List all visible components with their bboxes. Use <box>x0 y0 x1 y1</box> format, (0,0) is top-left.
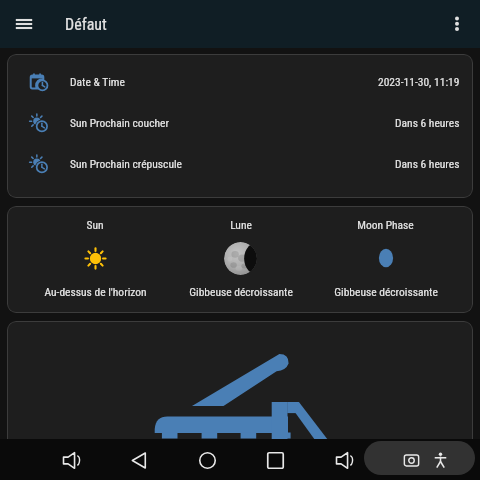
button[interactable]: Sun Prochain coucher <box>7 102 473 143</box>
button[interactable]: Back <box>124 445 154 475</box>
staticText: Défaut <box>65 15 107 34</box>
staticText: Lune <box>230 218 252 231</box>
button[interactable]: More options <box>441 8 473 40</box>
button[interactable]: Sun Prochain crépuscule <box>7 143 473 184</box>
button[interactable]: Moon Phase <box>313 206 458 313</box>
button[interactable]: Volume up <box>329 445 359 475</box>
button[interactable]: Accessibility <box>425 445 455 475</box>
staticText: Dans 6 heures <box>395 157 460 170</box>
button[interactable] <box>7 321 473 480</box>
staticText: Sun Prochain coucher <box>70 116 169 129</box>
staticText: Moon Phase <box>357 218 414 231</box>
staticText: Sun <box>86 218 104 231</box>
staticText: Date & Time <box>70 75 125 88</box>
staticText: 2023-11-30, 11:19 <box>378 75 460 88</box>
staticText: Gibbeuse décroissante <box>189 285 293 298</box>
button[interactable]: Volume down <box>56 445 86 475</box>
staticText: Au-dessus de l'horizon <box>44 285 147 298</box>
staticText: Gibbeuse décroissante <box>334 285 438 298</box>
staticText: Sun Prochain crépuscule <box>70 157 182 170</box>
button[interactable]: Home <box>192 445 222 475</box>
button[interactable]: Date & Time <box>7 61 473 102</box>
staticText: Dans 6 heures <box>395 116 460 129</box>
button[interactable]: Sun <box>22 206 168 313</box>
button[interactable]: Screenshot <box>396 445 426 475</box>
button[interactable]: Recents <box>260 445 290 475</box>
button[interactable]: Lune <box>168 206 313 313</box>
button[interactable]: Navigation menu <box>8 8 40 40</box>
